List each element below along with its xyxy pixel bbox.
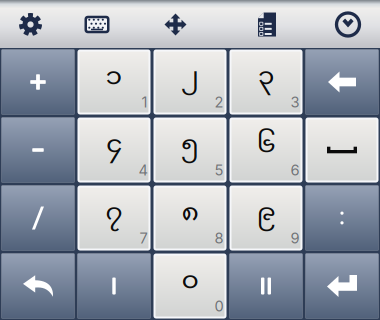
staticText: ၈ — [181, 196, 198, 232]
staticText: 5 — [214, 161, 223, 179]
staticText: ၉ — [256, 196, 275, 232]
button[interactable]: 7 — [76, 184, 152, 252]
staticText: 3 — [290, 93, 299, 111]
button[interactable]: Slash — [0, 184, 76, 252]
button[interactable]: Documents — [218, 0, 316, 48]
staticText: ၀ — [181, 264, 198, 300]
staticText: 8 — [214, 229, 223, 247]
button[interactable]: Double bar — [228, 252, 304, 320]
staticText: ၃ — [258, 60, 274, 96]
button[interactable]: Change keyboard — [61, 0, 133, 48]
button[interactable]: Return — [304, 252, 380, 320]
staticText: 4 — [138, 161, 147, 179]
button[interactable]: 8 — [152, 184, 228, 252]
button[interactable]: 3 — [228, 48, 304, 116]
button[interactable]: Single bar — [76, 252, 152, 320]
button[interactable]: Minus — [0, 116, 76, 184]
button[interactable]: 0 — [152, 252, 228, 320]
button[interactable]: Settings — [0, 0, 61, 48]
button[interactable]: 9 — [228, 184, 304, 252]
button[interactable]: Plus — [0, 48, 76, 116]
button[interactable]: 5 — [152, 116, 228, 184]
staticText: 7 — [139, 229, 147, 247]
staticText: ၂ — [181, 60, 199, 96]
button[interactable]: Hide keyboard — [316, 0, 380, 48]
button[interactable]: Move keyboard — [133, 0, 218, 48]
staticText: ၄ — [106, 128, 122, 164]
staticText: ၆ — [256, 128, 275, 164]
staticText: 0 — [214, 297, 223, 315]
staticText: ၇ — [105, 196, 122, 232]
button[interactable]: 1 — [76, 48, 152, 116]
staticText: 1 — [141, 93, 147, 111]
button[interactable]: 2 — [152, 48, 228, 116]
button[interactable]: Delete — [304, 48, 380, 116]
button[interactable]: Space — [304, 116, 380, 184]
button[interactable]: Colon — [304, 184, 380, 252]
button[interactable]: 4 — [76, 116, 152, 184]
staticText: ၅ — [181, 128, 199, 164]
staticText: 9 — [290, 229, 299, 247]
button[interactable]: Undo — [0, 252, 76, 320]
button[interactable]: 6 — [228, 116, 304, 184]
staticText: ၁ — [105, 60, 122, 96]
staticText: 6 — [290, 161, 299, 179]
staticText: 2 — [214, 93, 223, 111]
